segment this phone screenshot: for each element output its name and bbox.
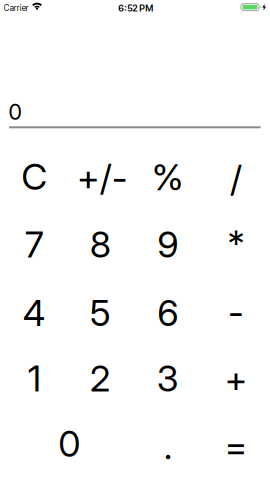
- staticText: -: [228, 290, 244, 334]
- staticText: C: [21, 155, 47, 198]
- staticText: 2: [90, 357, 111, 400]
- staticText: 0: [8, 98, 22, 125]
- staticText: =: [225, 424, 248, 468]
- button[interactable]: 6: [139, 285, 197, 341]
- staticText: 6:52 PM: [118, 2, 153, 14]
- staticText: 6: [157, 291, 178, 335]
- staticText: +: [224, 358, 247, 401]
- button[interactable]: 9: [139, 216, 197, 272]
- button[interactable]: 3: [139, 350, 197, 406]
- staticText: %: [152, 155, 184, 199]
- button[interactable]: .: [139, 418, 197, 474]
- staticText: 9: [157, 223, 178, 266]
- button[interactable]: 8: [71, 216, 129, 272]
- staticText: 4: [23, 291, 46, 335]
- button[interactable]: %: [139, 149, 197, 205]
- staticText: Carrier: [4, 3, 29, 13]
- button[interactable]: *: [207, 215, 265, 271]
- button[interactable]: 0: [40, 416, 98, 472]
- button[interactable]: +: [207, 351, 265, 407]
- button[interactable]: -: [207, 284, 265, 340]
- staticText: 3: [157, 357, 179, 400]
- staticText: *: [227, 222, 244, 265]
- staticText: 0: [58, 422, 80, 465]
- button[interactable]: 7: [5, 216, 63, 272]
- button[interactable]: 1: [5, 350, 63, 406]
- button[interactable]: 2: [71, 350, 129, 406]
- button[interactable]: +/-: [69, 150, 135, 206]
- staticText: /: [230, 157, 242, 200]
- staticText: +/-: [77, 156, 128, 199]
- staticText: 7: [25, 223, 44, 266]
- button[interactable]: 5: [71, 285, 129, 341]
- staticText: 5: [90, 291, 111, 335]
- staticText: 8: [90, 223, 111, 266]
- staticText: .: [164, 424, 173, 468]
- button[interactable]: =: [207, 418, 265, 474]
- button[interactable]: /: [207, 151, 265, 207]
- button[interactable]: C: [5, 149, 63, 205]
- button[interactable]: 4: [5, 285, 63, 341]
- staticText: 1: [28, 357, 41, 400]
